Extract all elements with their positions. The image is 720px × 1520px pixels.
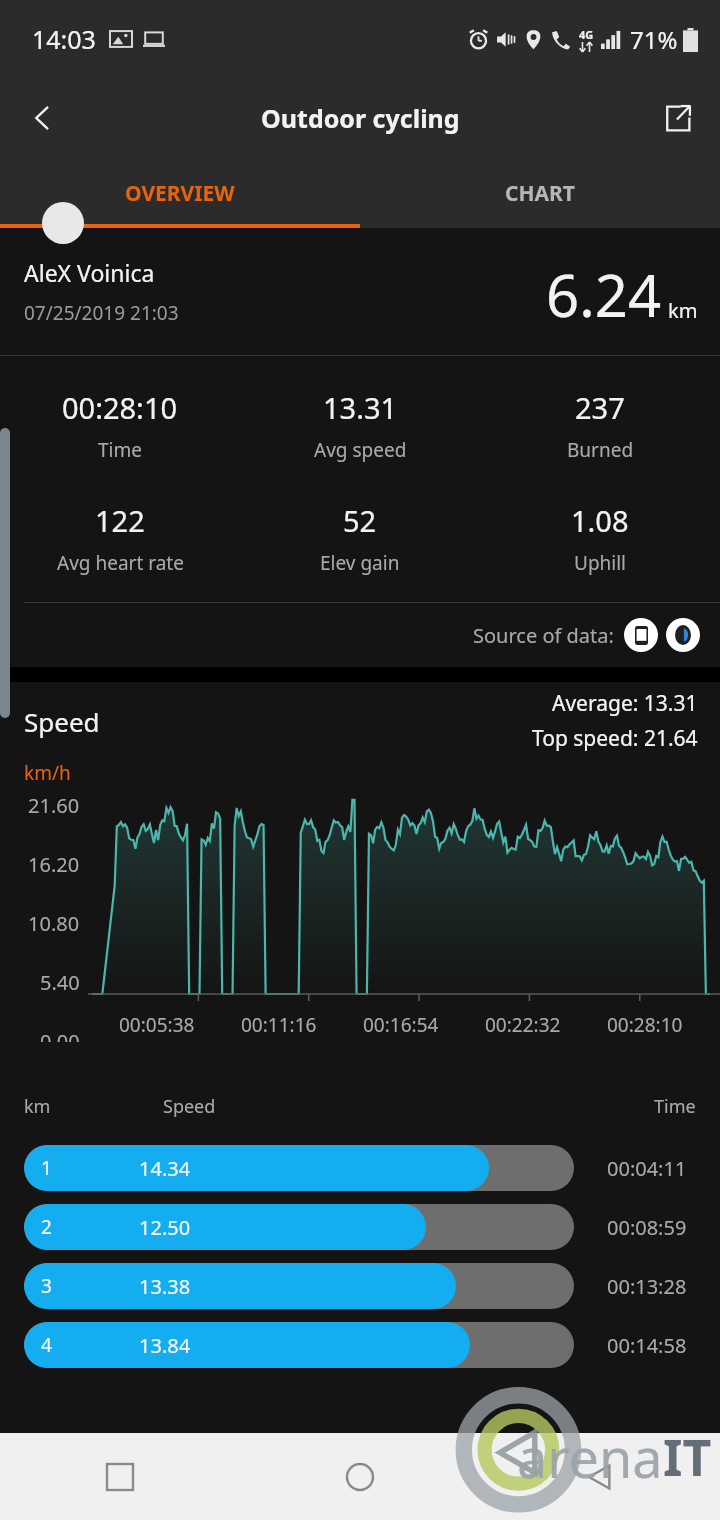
staticText: Outdoor cycling [261,101,460,135]
staticText: 10.80 [28,910,80,937]
staticText: 71% [630,23,678,56]
staticText: 07/25/2019 21:03 [24,300,179,326]
staticText: 00:28:10 [607,1012,683,1038]
staticText: 13.38 [139,1273,191,1300]
staticText: OVERVIEW [125,179,235,208]
staticText: Uphill [574,550,627,576]
button[interactable]: 3 [0,1263,720,1309]
staticText: CHART [505,179,575,208]
staticText: Burned [567,437,634,463]
button[interactable]: Share [648,89,706,147]
staticText: Avg speed [314,437,407,463]
button[interactable]: Watch source [666,618,700,652]
button[interactable]: Recent apps [0,1433,240,1520]
staticText: Avg heart rate [57,550,184,576]
staticText: Elev gain [320,550,400,576]
button[interactable]: Home [240,1433,480,1520]
staticText: 237 [575,388,625,427]
staticText: Average: 13.31 [552,689,698,718]
staticText: 14:03 [32,22,96,56]
button[interactable]: 122 [0,501,240,576]
staticText: 52 [343,501,377,540]
staticText: 13.84 [139,1332,191,1359]
staticText: arena [517,1420,663,1494]
staticText: 16.20 [28,851,80,878]
staticText: 1 [41,1155,52,1181]
staticText: 00:08:59 [607,1214,687,1241]
button[interactable]: 1 [0,1145,720,1191]
button[interactable]: Back [14,89,72,147]
staticText: 00:14:58 [607,1332,687,1359]
staticText: Speed [163,1094,216,1119]
button[interactable]: 4 [0,1322,720,1368]
staticText: Top speed: 21.64 [532,724,698,753]
staticText: 00:04:11 [607,1155,687,1182]
button[interactable]: 237 [480,388,720,463]
staticText: 5.40 [40,969,80,996]
staticText: Time [654,1094,696,1119]
staticText: Speed [24,704,100,739]
staticText: 1.08 [571,501,629,540]
staticText: Source of data: [473,622,614,649]
button[interactable]: Back [480,1433,720,1520]
staticText: 3 [41,1273,52,1299]
staticText: 00:11:16 [241,1012,317,1038]
staticText: 12.50 [139,1214,191,1241]
staticText: 00:22:32 [485,1012,561,1038]
button[interactable]: CHART [360,158,720,228]
staticText: 0.00 [40,1028,80,1042]
staticText: 4G [579,27,594,42]
button[interactable]: 13.31 [240,388,480,463]
staticText: 00:05:38 [119,1012,195,1038]
staticText: AleX Voinica [24,257,155,288]
button[interactable]: Phone source [624,618,658,652]
staticText: IT [663,1423,712,1491]
staticText: 4 [41,1332,52,1358]
staticText: km/h [24,760,71,786]
button[interactable]: 52 [240,501,480,576]
staticText: 00:16:54 [363,1012,439,1038]
staticText: km [24,1094,51,1119]
button[interactable]: OVERVIEW [0,158,360,228]
staticText: km [668,297,698,324]
staticText: 122 [95,501,145,540]
staticText: 6.24 [546,255,662,334]
staticText: 00:28:10 [62,388,178,427]
staticText: 13.31 [323,388,398,427]
staticText: Time [98,437,142,463]
staticText: 2 [41,1214,52,1240]
staticText: 21.60 [28,792,80,819]
button[interactable]: 2 [0,1204,720,1250]
staticText: 00:13:28 [607,1273,687,1300]
button[interactable]: 00:28:10 [0,388,240,463]
staticText: 14.34 [139,1155,191,1182]
button[interactable]: 1.08 [480,501,720,576]
